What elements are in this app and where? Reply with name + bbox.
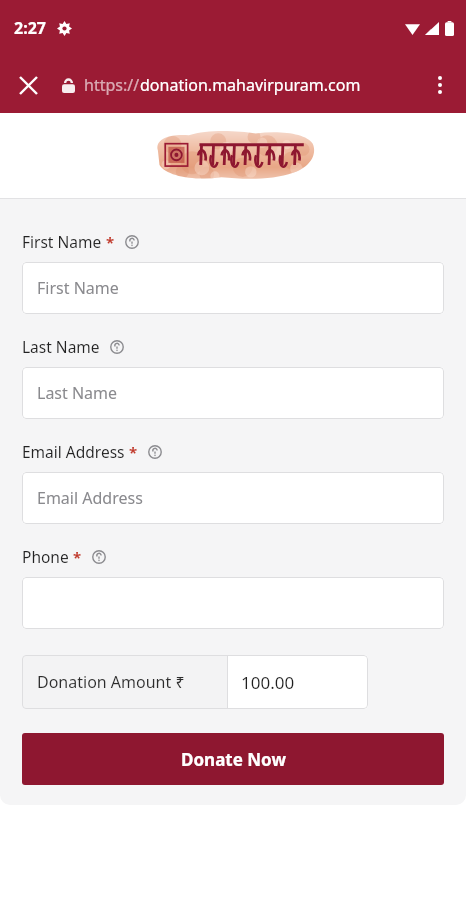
button[interactable]: Help for Phone: [89, 547, 109, 567]
staticText: First Name: [22, 231, 102, 252]
button[interactable]: Help for Last Name: [107, 337, 127, 357]
staticText: 100.00: [241, 671, 295, 694]
button[interactable]: Help for Email Address: [145, 442, 165, 462]
staticText: https://: [84, 74, 140, 96]
button[interactable]: Donation Amount ₹: [22, 655, 227, 709]
staticText: 2:27: [14, 17, 46, 39]
button[interactable]: Donate Now: [22, 733, 444, 785]
staticText: *: [129, 442, 138, 462]
button[interactable]: Email Address: [22, 472, 444, 524]
button[interactable]: First Name: [22, 262, 444, 314]
button[interactable]: Help for First Name: [122, 232, 142, 252]
staticText: *: [73, 547, 82, 567]
button[interactable]: Close: [8, 65, 48, 105]
button[interactable]: 100.00: [228, 655, 368, 709]
button[interactable]: Last Name: [22, 367, 444, 419]
staticText: Donation Amount ₹: [37, 671, 185, 693]
staticText: donation.mahavirpuram.com: [140, 74, 361, 96]
staticText: *: [106, 232, 115, 252]
button[interactable]: More options: [420, 65, 460, 105]
staticText: Last Name: [22, 336, 100, 357]
staticText: Email Address: [37, 487, 143, 509]
staticText: First Name: [37, 277, 119, 299]
staticText: Phone: [22, 546, 69, 567]
staticText: Donate Now: [181, 748, 286, 771]
staticText: Last Name: [37, 382, 118, 404]
staticText: Email Address: [22, 441, 125, 462]
button[interactable]: [22, 577, 444, 629]
